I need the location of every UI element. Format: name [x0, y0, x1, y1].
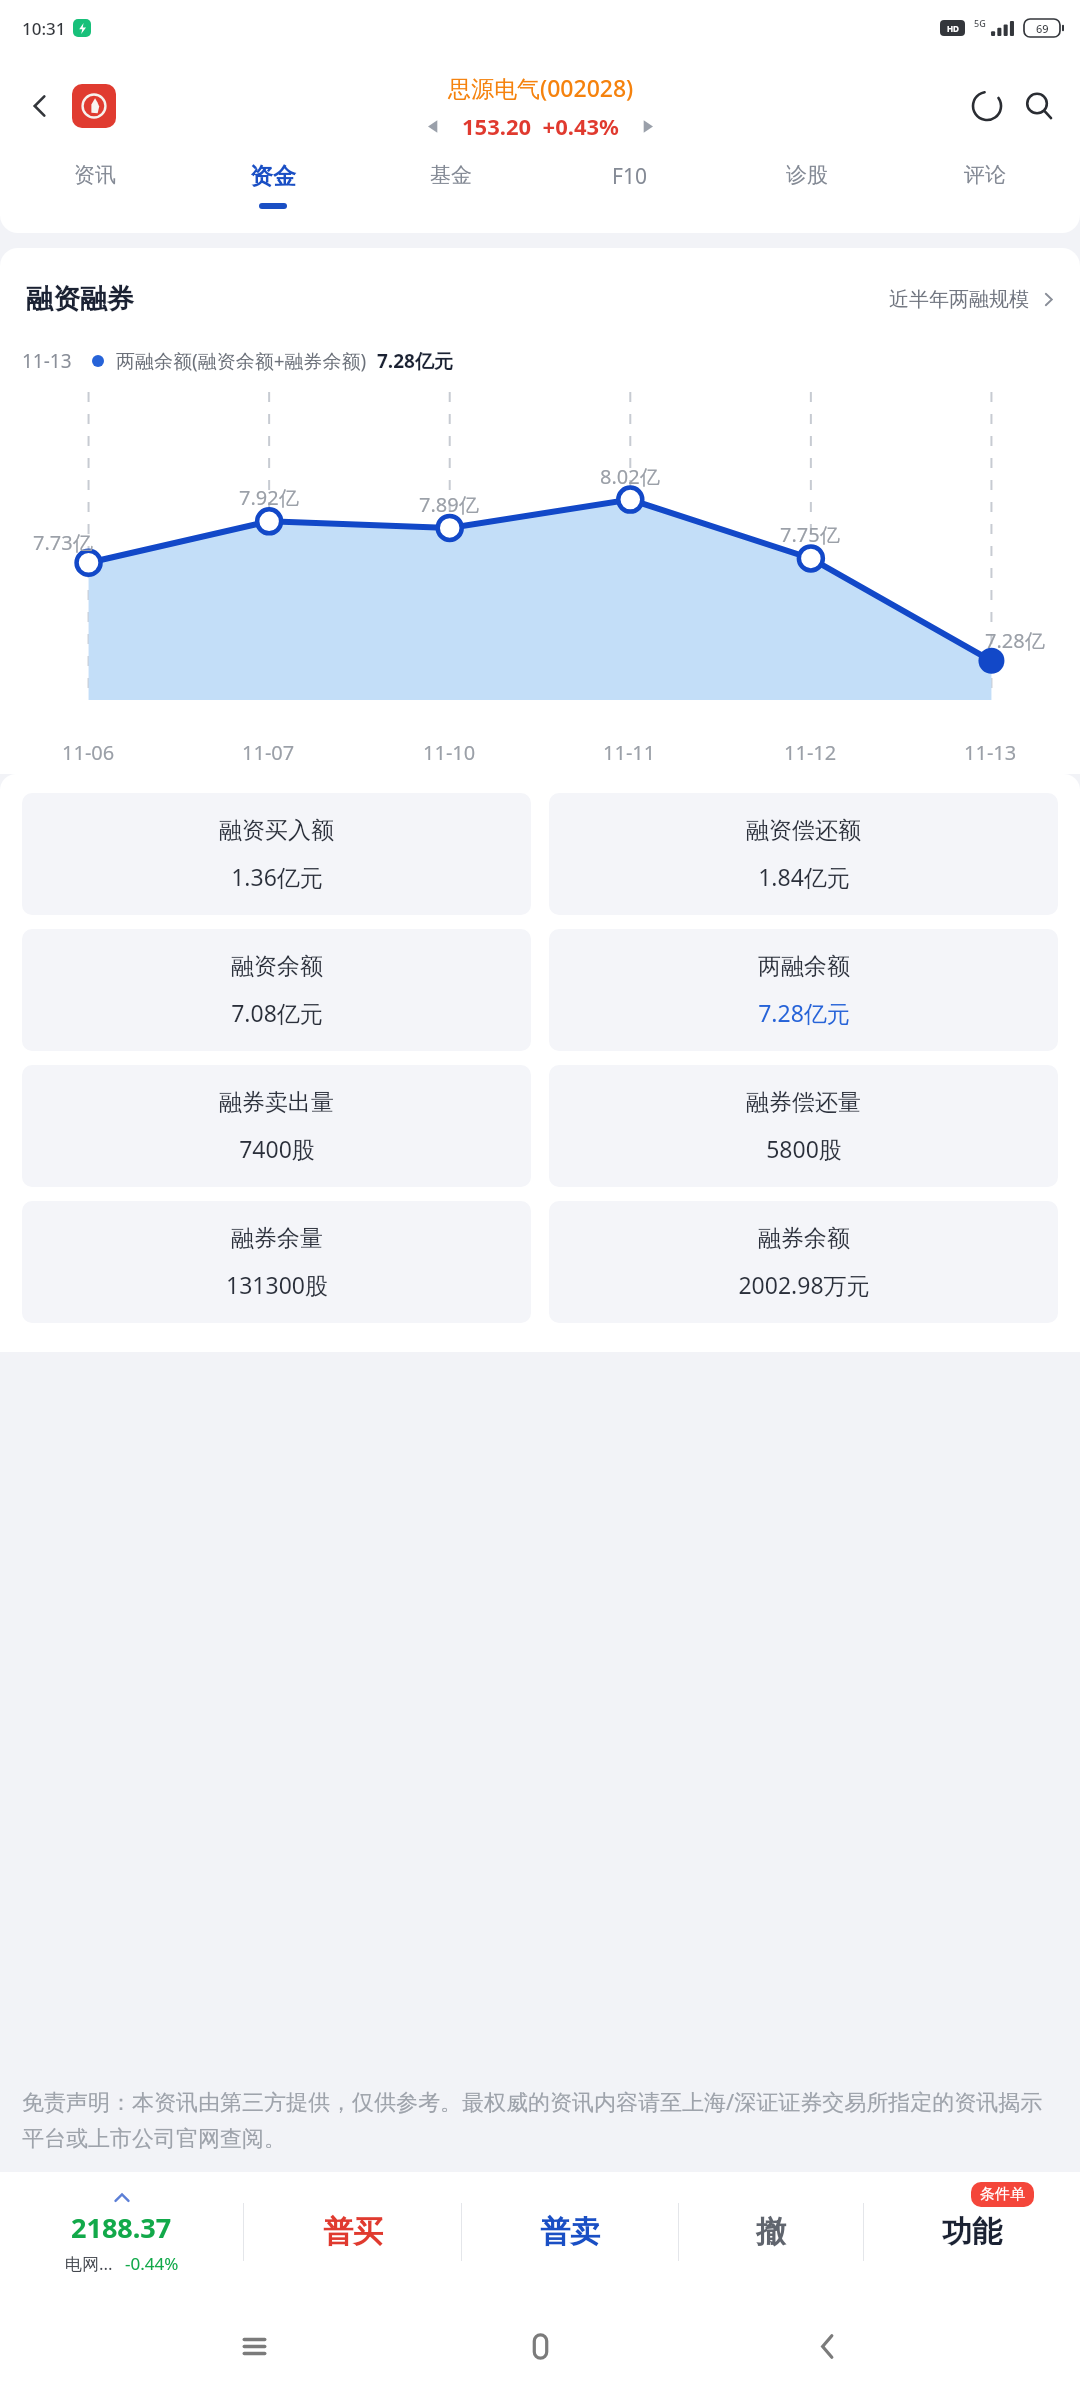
staticText: 7.73亿 [33, 529, 93, 556]
staticText: 融资买入额 [219, 816, 334, 845]
staticText: 普买 [323, 2213, 383, 2251]
button[interactable]: 资讯 [6, 156, 184, 212]
staticText: 11-12 [784, 739, 837, 766]
button[interactable]: 普买 [244, 2172, 461, 2292]
staticText: -0.44% [125, 2252, 179, 2275]
staticText: 69 [1036, 21, 1049, 36]
staticText: 7.08亿元 [231, 997, 323, 1028]
staticText: 诊股 [786, 162, 828, 188]
staticText: 11-13 [22, 348, 72, 374]
staticText: 近半年两融规模 [889, 287, 1029, 312]
staticText: 资讯 [74, 162, 116, 188]
staticText: 7.92亿 [239, 484, 299, 511]
button[interactable]: 诊股 [718, 156, 896, 212]
button[interactable]: Search [1014, 81, 1064, 131]
button[interactable]: Refresh [962, 81, 1012, 131]
staticText: 7400股 [239, 1133, 315, 1164]
staticText: 功能 [942, 2213, 1002, 2251]
staticText: 7.75亿 [780, 521, 840, 548]
staticText: 两融余额 [758, 952, 850, 981]
button[interactable]: 评论 [896, 156, 1074, 212]
staticText: 2002.98万元 [738, 1269, 870, 1300]
button[interactable]: 融券余额 [549, 1201, 1058, 1323]
button[interactable]: 近半年两融规模 [885, 283, 1060, 316]
staticText: 融资余额 [231, 952, 323, 981]
button[interactable]: 功能 [864, 2172, 1080, 2292]
button[interactable]: 融资买入额 [22, 793, 531, 915]
button[interactable]: Back [16, 82, 64, 130]
staticText: 11-10 [423, 739, 476, 766]
staticText: 融券卖出量 [219, 1088, 334, 1117]
staticText: 两融余额(融资余额+融券余额) [116, 348, 367, 374]
staticText: 7.28亿元 [377, 348, 453, 374]
staticText: 1.36亿元 [231, 861, 323, 892]
staticText: 条件单 [980, 2185, 1025, 2204]
button[interactable]: F10 [540, 156, 718, 215]
staticText: 资金 [250, 162, 296, 191]
staticText: 普卖 [540, 2213, 600, 2251]
button[interactable]: Back [794, 2313, 860, 2379]
staticText: 7.28亿元 [758, 997, 850, 1028]
button[interactable]: 资金 [184, 156, 362, 215]
staticText: 11-11 [603, 739, 656, 766]
button[interactable]: 基金 [362, 156, 540, 212]
staticText: 融券偿还量 [746, 1088, 861, 1117]
button[interactable]: 融券卖出量 [22, 1065, 531, 1187]
staticText: 融资偿还额 [746, 816, 861, 845]
staticText: 融资融券 [26, 282, 134, 316]
staticText: 免责声明：本资讯由第三方提供，仅供参考。最权威的资讯内容请至上海/深证证券交易所… [22, 2086, 1062, 2152]
staticText: 5800股 [766, 1133, 842, 1164]
staticText: HD [947, 23, 959, 34]
staticText: 评论 [964, 162, 1006, 188]
staticText: 5G [974, 17, 986, 29]
button[interactable]: Recents [221, 2313, 287, 2379]
staticText: 131300股 [226, 1269, 328, 1300]
staticText: 基金 [430, 162, 472, 188]
staticText: F10 [612, 162, 647, 191]
staticText: 2188.37 [71, 2209, 172, 2246]
button[interactable]: 两融余额 [549, 929, 1058, 1051]
button[interactable]: 融券偿还量 [549, 1065, 1058, 1187]
staticText: 153.20 +0.43% [462, 111, 619, 141]
staticText: 电网... [65, 2252, 113, 2275]
staticText: 10:31 [22, 17, 66, 40]
staticText: 7.89亿 [419, 491, 479, 518]
button[interactable]: 普卖 [462, 2172, 678, 2292]
button[interactable]: Home [507, 2313, 573, 2379]
staticText: 11-06 [62, 739, 115, 766]
staticText: 11-13 [964, 739, 1017, 766]
staticText: 融券余额 [758, 1224, 850, 1253]
button[interactable]: 撤 [679, 2172, 863, 2292]
staticText: 8.02亿 [600, 463, 660, 490]
button[interactable]: 2188.37 [0, 2172, 243, 2292]
staticText: 融券余量 [231, 1224, 323, 1253]
button[interactable]: 融资偿还额 [549, 793, 1058, 915]
staticText: 7.28亿 [985, 627, 1045, 654]
staticText: 11-07 [242, 739, 295, 766]
button[interactable]: Broker app [72, 84, 116, 128]
staticText: 撤 [756, 2213, 786, 2251]
button[interactable]: 融券余量 [22, 1201, 531, 1323]
button[interactable]: 融资余额 [22, 929, 531, 1051]
staticText: 思源电气(002028) [448, 72, 634, 103]
staticText: 1.84亿元 [758, 861, 850, 892]
